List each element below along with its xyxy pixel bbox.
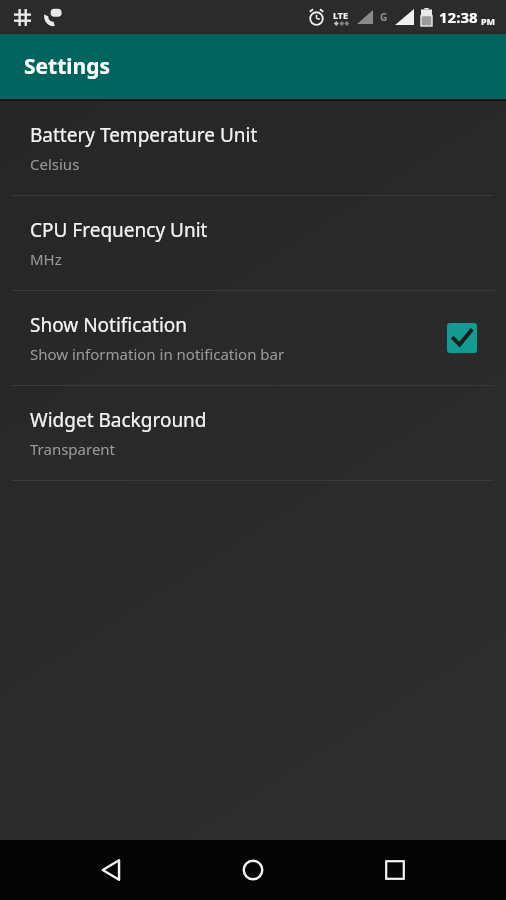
staticText: Battery Temperature Unit: [30, 122, 258, 148]
button[interactable]: Battery Temperature Unit: [0, 101, 506, 195]
staticText: CPU Frequency Unit: [30, 217, 208, 243]
staticText: Widget Background: [30, 407, 207, 433]
staticText: Transparent: [30, 439, 116, 459]
staticText: Celsius: [30, 154, 80, 174]
staticText: Settings: [24, 52, 111, 81]
button[interactable]: Recent apps: [365, 840, 425, 900]
staticText: Show information in notification bar: [30, 344, 285, 364]
button[interactable]: Home: [223, 840, 283, 900]
staticText: Show Notification: [30, 312, 188, 338]
button[interactable]: Show Notification: [0, 291, 506, 385]
button[interactable]: Show Notification toggle: [442, 318, 482, 358]
staticText: MHz: [30, 249, 62, 269]
staticText: 12:38: [439, 7, 478, 27]
staticText: PM: [481, 15, 496, 27]
staticText: LTE: [333, 9, 349, 21]
button[interactable]: CPU Frequency Unit: [0, 196, 506, 290]
staticText: G: [380, 10, 388, 24]
button[interactable]: Back: [82, 840, 142, 900]
button[interactable]: Widget Background: [0, 386, 506, 480]
